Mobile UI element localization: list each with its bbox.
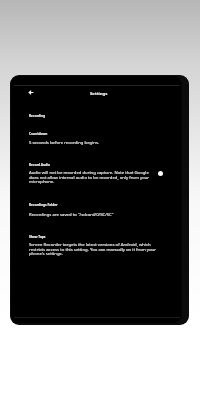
button[interactable]: Countdown: [29, 132, 159, 136]
button[interactable]: Record Audio: [29, 163, 159, 167]
button[interactable]: Back: [23, 85, 37, 99]
staticText: Audio will not be recorded during captur…: [29, 169, 159, 184]
staticText: Settings: [90, 90, 108, 96]
staticText: Screen Recorder targets the latest versi…: [29, 241, 159, 256]
button[interactable]: Recording: [29, 114, 159, 118]
staticText: 5 seconds before recording begins.: [29, 139, 159, 145]
button[interactable]: Record audio toggle: [149, 168, 163, 178]
staticText: Recordings are saved to "/sdcard/0/SC/SC…: [29, 211, 159, 217]
button[interactable]: Show Taps: [29, 235, 159, 239]
button[interactable]: Recordings Folder: [29, 203, 159, 207]
